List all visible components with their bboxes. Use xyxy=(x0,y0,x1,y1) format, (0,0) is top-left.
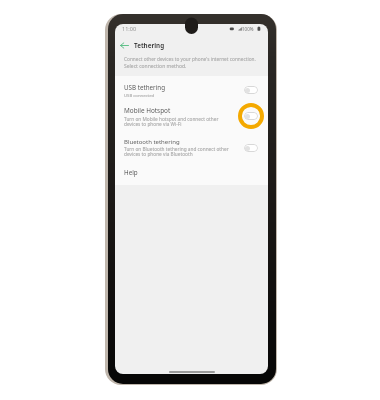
staticText: Bluetooth tethering xyxy=(124,138,180,146)
staticText: Help xyxy=(124,168,138,177)
staticText: Turn on Mobile hotspot and connect other xyxy=(124,116,219,122)
button[interactable]: Mobile Hotspot xyxy=(115,102,268,130)
staticText: Select connection method. xyxy=(124,63,187,70)
button[interactable]: USB tethering switch xyxy=(244,86,258,94)
button[interactable]: Help xyxy=(115,163,268,184)
button[interactable]: Bluetooth tethering xyxy=(115,132,268,160)
staticText: USB connected xyxy=(124,92,155,98)
staticText: Turn on Bluetooth tethering and connect … xyxy=(124,146,229,152)
button[interactable]: Bluetooth tethering switch xyxy=(244,144,258,152)
staticText: devices to phone via Wi-Fi xyxy=(124,121,182,127)
button[interactable]: Back xyxy=(115,36,133,54)
staticText: 11:00 xyxy=(122,25,137,32)
staticText: devices to phone via Bluetooth xyxy=(124,151,193,157)
staticText: USB tethering xyxy=(124,83,166,92)
staticText: Connect other devices to your phone's in… xyxy=(124,56,256,62)
staticText: 100% xyxy=(242,26,254,32)
button[interactable]: USB tethering, USB connected xyxy=(115,77,268,101)
button[interactable]: Mobile Hotspot switch xyxy=(244,112,258,120)
staticText: Mobile Hotspot xyxy=(124,106,171,115)
staticText: Tethering xyxy=(134,41,165,50)
